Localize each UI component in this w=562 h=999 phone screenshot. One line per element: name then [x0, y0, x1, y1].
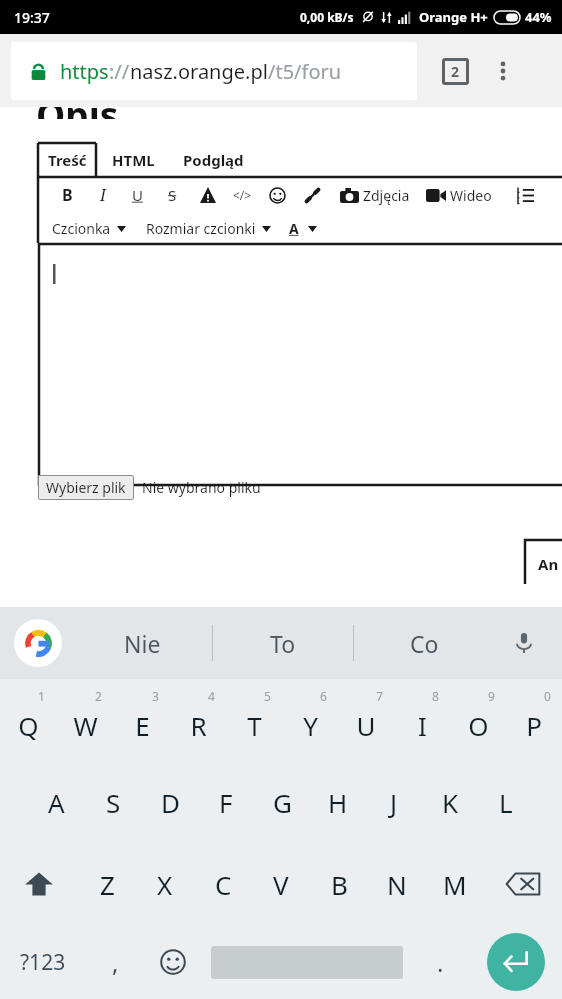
- staticText: Wideo: [450, 186, 492, 205]
- staticText: A: [48, 785, 65, 820]
- button[interactable]: ?123: [0, 925, 86, 999]
- staticText: X: [157, 867, 173, 902]
- staticText: O: [468, 708, 489, 743]
- staticText: 19:37: [14, 8, 50, 27]
- staticText: </>: [233, 187, 252, 203]
- staticText: Orange H+: [419, 8, 488, 26]
- button[interactable]: D: [142, 761, 198, 843]
- button[interactable]: Voice input: [502, 621, 546, 665]
- staticText: 0: [544, 688, 551, 704]
- staticText: 4: [208, 688, 215, 704]
- staticText: Wybierz plik: [46, 478, 126, 497]
- button[interactable]: Czcionka: [52, 219, 126, 238]
- staticText: A: [289, 219, 299, 238]
- button[interactable]: Z: [78, 843, 136, 925]
- button[interactable]: More options: [483, 51, 523, 91]
- button[interactable]: Rozmiar czcionki: [146, 219, 271, 238]
- button[interactable]: 1: [0, 679, 57, 761]
- button[interactable]: X: [136, 843, 194, 925]
- button[interactable]: Enter: [469, 925, 562, 999]
- staticText: 0,00 kB/s: [300, 9, 354, 25]
- staticText: W: [73, 708, 98, 743]
- button[interactable]: To: [213, 607, 353, 679]
- staticText: Q: [18, 708, 39, 743]
- staticText: B: [62, 184, 73, 206]
- staticText: 2: [451, 62, 460, 81]
- button[interactable]: Wideo: [424, 186, 494, 205]
- button[interactable]: N: [368, 843, 426, 925]
- staticText: Co: [410, 628, 439, 659]
- button[interactable]: 2: [57, 679, 114, 761]
- button[interactable]: Strikethrough: [155, 178, 190, 212]
- staticText: .: [437, 946, 444, 979]
- staticText: T: [247, 708, 262, 743]
- button[interactable]: Bulleted list: [553, 178, 562, 212]
- staticText: Czcionka: [52, 219, 111, 238]
- button[interactable]: Insert code: [225, 178, 260, 212]
- button[interactable]: 3: [114, 679, 170, 761]
- button[interactable]: S: [85, 761, 142, 843]
- staticText: https: [60, 58, 109, 85]
- button[interactable]: B: [310, 843, 368, 925]
- button[interactable]: Wybierz plik: [38, 475, 134, 500]
- button[interactable]: Emoji: [260, 178, 295, 212]
- button[interactable]: Google search: [14, 619, 62, 667]
- staticText: ,: [112, 946, 119, 979]
- button[interactable]: Text color: [190, 178, 225, 212]
- staticText: 5: [264, 688, 271, 704]
- button[interactable]: 0: [506, 679, 562, 761]
- button[interactable]: C: [194, 843, 252, 925]
- staticText: G: [273, 785, 292, 820]
- staticText: D: [161, 785, 180, 820]
- button[interactable]: 6: [282, 679, 338, 761]
- button[interactable]: Podgląd: [171, 143, 256, 177]
- staticText: H: [328, 785, 348, 820]
- button[interactable]: Tabs, 2 open: [435, 51, 475, 91]
- button[interactable]: Numbered list: [508, 178, 543, 212]
- staticText: I: [418, 708, 427, 743]
- button[interactable]: M: [426, 843, 484, 925]
- button[interactable]: https: [11, 42, 417, 100]
- button[interactable]: Treść: [38, 143, 96, 177]
- button[interactable]: Emoji: [144, 925, 202, 999]
- staticText: Z: [100, 867, 115, 902]
- staticText: An: [538, 554, 559, 574]
- staticText: M: [443, 867, 467, 902]
- button[interactable]: Backspace: [484, 843, 562, 925]
- button[interactable]: Text color: [289, 219, 317, 238]
- button[interactable]: Nie: [72, 607, 212, 679]
- staticText: Treść: [48, 150, 87, 170]
- button[interactable]: 5: [226, 679, 282, 761]
- button[interactable]: Space: [202, 925, 411, 999]
- button[interactable]: HTML: [96, 143, 171, 177]
- button[interactable]: 4: [170, 679, 226, 761]
- staticText: C: [215, 867, 232, 902]
- button[interactable]: Bold: [50, 178, 85, 212]
- button[interactable]: Insert link: [295, 178, 330, 212]
- button[interactable]: V: [252, 843, 310, 925]
- button[interactable]: G: [254, 761, 310, 843]
- button[interactable]: 7: [338, 679, 394, 761]
- staticText: nasz.orange.pl: [130, 58, 268, 85]
- button[interactable]: L: [478, 761, 534, 843]
- button[interactable]: F: [198, 761, 254, 843]
- button[interactable]: 9: [450, 679, 506, 761]
- staticText: Zdjęcia: [363, 186, 410, 205]
- staticText: S: [106, 785, 121, 820]
- button[interactable]: Co: [354, 607, 494, 679]
- staticText: 7: [376, 688, 383, 704]
- button[interactable]: Italic: [85, 178, 120, 212]
- staticText: Nie wybrano pliku: [142, 478, 261, 497]
- button[interactable]: Zdjęcia: [338, 186, 412, 205]
- button[interactable]: .: [411, 925, 469, 999]
- staticText: U: [356, 708, 376, 743]
- button[interactable]: Shift: [0, 843, 78, 925]
- button[interactable]: K: [422, 761, 478, 843]
- button[interactable]: 8: [394, 679, 450, 761]
- button[interactable]: J: [366, 761, 422, 843]
- button[interactable]: ,: [86, 925, 144, 999]
- button[interactable]: Underline: [120, 178, 155, 212]
- button[interactable]: A: [28, 761, 85, 843]
- staticText: 2: [95, 688, 102, 704]
- button[interactable]: H: [310, 761, 366, 843]
